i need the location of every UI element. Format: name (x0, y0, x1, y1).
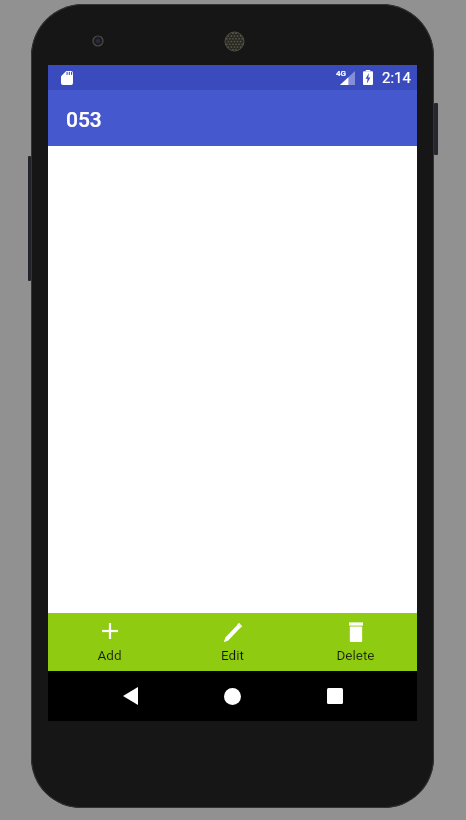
staticText: Add (97, 647, 122, 663)
button[interactable]: Delete (294, 613, 417, 633)
staticText: 2:14 (382, 69, 411, 87)
staticText: Delete (336, 647, 375, 663)
button[interactable]: Edit (171, 613, 294, 634)
staticText: 053 (66, 108, 102, 133)
button[interactable]: Add (48, 613, 171, 629)
button[interactable]: Back (106, 671, 154, 721)
button[interactable]: Home (208, 671, 256, 721)
button[interactable]: Recent apps (311, 671, 359, 721)
staticText: 4G (336, 69, 346, 78)
staticText: Edit (221, 647, 244, 663)
